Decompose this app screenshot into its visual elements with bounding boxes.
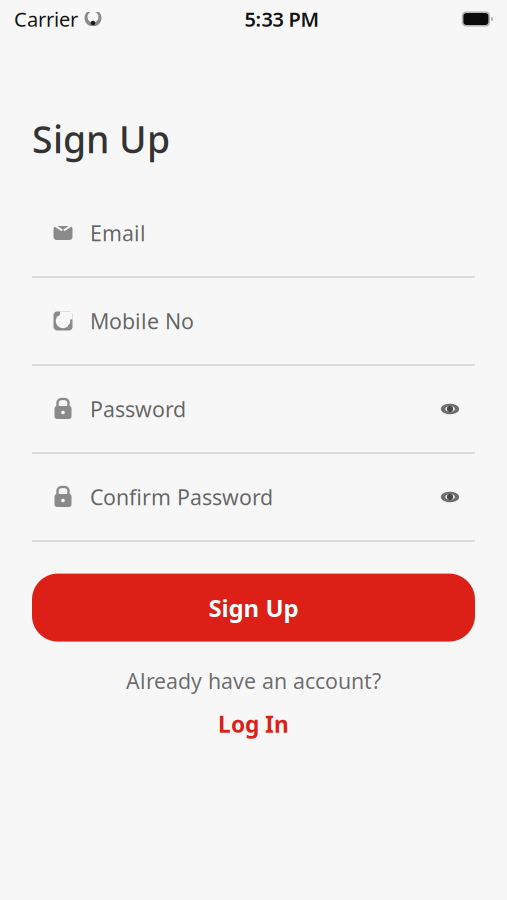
staticText: Password (90, 395, 186, 423)
button[interactable]: Log In (200, 703, 307, 745)
staticText: Sign Up (32, 114, 170, 164)
staticText: Already have an account? (126, 667, 381, 695)
button[interactable]: Sign Up (32, 574, 475, 642)
staticText: 5:33 PM (244, 6, 319, 32)
button[interactable]: Show Confirm Password (433, 480, 467, 514)
staticText: Email (90, 219, 146, 247)
staticText: Carrier (14, 6, 78, 32)
button[interactable]: Show Password (433, 392, 467, 426)
staticText: Confirm Password (90, 483, 273, 511)
staticText: Sign Up (208, 592, 298, 623)
staticText: Mobile No (90, 307, 194, 335)
staticText: Log In (218, 709, 289, 739)
